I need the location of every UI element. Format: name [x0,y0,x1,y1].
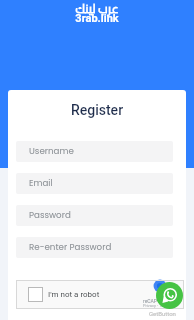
button[interactable]: Re-enter Password [16,237,173,258]
staticText: Register [8,102,186,118]
staticText: Privacy - Terms [143,303,171,308]
staticText: reCAPTCHA [143,298,171,304]
staticText: عرب لينك [0,0,194,19]
staticText: Password [29,209,71,221]
staticText: Email [29,177,53,189]
staticText: Re-enter Password [29,241,112,253]
button[interactable]: Password [16,205,173,226]
staticText: I'm not a robot [48,290,100,299]
button[interactable]: Email [16,173,173,194]
button[interactable]: WhatsApp [156,282,183,309]
staticText: GetButton [149,310,176,317]
staticText: Username [29,145,74,157]
staticText: 3rab.link [0,12,194,25]
button[interactable]: Username [16,141,173,162]
button[interactable]: I'm not a robot [16,280,184,309]
